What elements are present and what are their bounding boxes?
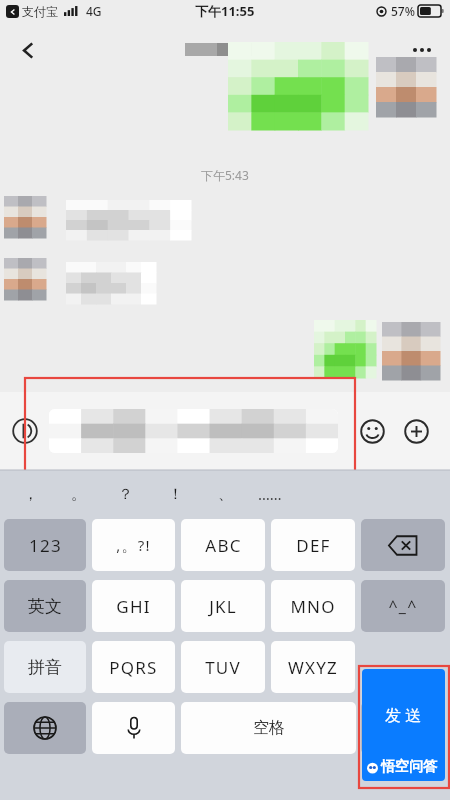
staticText: 123 [29, 534, 62, 557]
button[interactable]: GHI [92, 580, 175, 632]
staticText: ？ [118, 485, 133, 504]
button[interactable]: 发 送 [362, 669, 445, 781]
button[interactable]: 空格 [181, 702, 356, 754]
staticText: ABC [205, 534, 242, 557]
button[interactable]: Emoji [352, 411, 392, 451]
staticText: DEF [296, 534, 331, 557]
staticText: 发 送 [385, 704, 422, 726]
button[interactable]: Voice input [92, 702, 175, 754]
button[interactable]: 英文 [4, 580, 86, 632]
button[interactable]: JKL [181, 580, 265, 632]
button[interactable]: DEF [271, 519, 355, 571]
staticText: 4G [86, 3, 102, 19]
staticText: 下午5:43 [201, 167, 249, 183]
staticText: 支付宝 [22, 4, 58, 19]
button[interactable]: ABC [181, 519, 265, 571]
button[interactable]: ， [10, 473, 50, 515]
button[interactable]: ,。?! [92, 519, 175, 571]
button[interactable]: …… [250, 473, 290, 515]
staticText: ^_^ [388, 595, 418, 617]
button[interactable]: ！ [155, 473, 195, 515]
button[interactable]: More options [402, 30, 442, 70]
staticText: …… [258, 484, 282, 504]
button[interactable]: TUV [181, 641, 265, 693]
button[interactable]: ^_^ [361, 580, 445, 632]
staticText: ， [23, 485, 38, 504]
staticText: 。 [71, 485, 86, 504]
button[interactable]: PQRS [92, 641, 175, 693]
button[interactable]: Switch keyboard [4, 702, 86, 754]
button[interactable]: 拼音 [4, 641, 86, 693]
staticText: WXYZ [288, 656, 338, 679]
button[interactable]: Back [8, 30, 48, 70]
staticText: 悟空问答 [381, 758, 437, 776]
staticText: 英文 [28, 596, 62, 617]
button[interactable]: More functions [396, 411, 436, 451]
staticText: 空格 [253, 718, 285, 738]
staticText: 下午11:55 [195, 2, 255, 20]
staticText: MNO [290, 595, 336, 618]
button[interactable]: 。 [58, 473, 98, 515]
staticText: GHI [116, 595, 151, 618]
staticText: 、 [218, 485, 233, 504]
button[interactable]: 、 [205, 473, 245, 515]
staticText: TUV [205, 656, 241, 679]
staticText: ,。?! [116, 535, 151, 555]
staticText: ！ [168, 485, 183, 504]
button[interactable]: 123 [4, 519, 86, 571]
button[interactable]: Delete [361, 519, 445, 571]
button[interactable]: Voice input [3, 409, 47, 453]
staticText: PQRS [109, 656, 158, 679]
staticText: 拼音 [28, 657, 62, 678]
button[interactable]: WXYZ [271, 641, 355, 693]
staticText: 57% [391, 3, 415, 19]
button[interactable]: ？ [105, 473, 145, 515]
staticText: JKL [209, 595, 237, 618]
button[interactable] [49, 409, 338, 453]
button[interactable]: MNO [271, 580, 355, 632]
